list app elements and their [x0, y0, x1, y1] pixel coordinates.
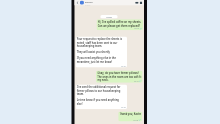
staticText: Let me know if you need anything else! — [77, 98, 119, 105]
staticText: 10:17 — [134, 80, 139, 82]
button[interactable]: Thank you, Rachel! — [118, 111, 142, 121]
button[interactable]: Your request to replace the sheets is no… — [75, 36, 127, 67]
staticText: 10:15 — [121, 64, 126, 67]
staticText: 10:18 — [121, 106, 126, 109]
staticText: Hi, I've spilled coffee on my sheets. Ca… — [98, 20, 141, 27]
staticText: They will assist you shortly — [77, 50, 110, 54]
button[interactable]: Today — [100, 15, 118, 18]
button[interactable]: Call — [139, 1, 143, 4]
staticText: I've send the additional request for fir… — [77, 85, 121, 96]
button[interactable]: Hi, I've spilled coffee on my sheets. Ca… — [96, 19, 143, 30]
button[interactable]: I've send the additional request for fir… — [75, 84, 127, 109]
staticText: 10:14 — [134, 27, 139, 30]
staticText: Today — [106, 15, 112, 18]
staticText: Thank you, Rachel! — [119, 112, 141, 116]
staticText: Okay, do you have firmer pillows? The on… — [97, 71, 141, 82]
button[interactable]: Back — [76, 1, 79, 4]
staticText: If you need anything else in the meantim… — [77, 56, 116, 63]
staticText: 10:19 — [133, 118, 138, 121]
button[interactable]: Video call — [135, 1, 138, 4]
staticText: Your request to replace the sheets is no… — [77, 37, 122, 48]
button[interactable]: Okay, do you have firmer pillows? The on… — [96, 70, 142, 83]
staticText: Rachel — [85, 0, 93, 3]
